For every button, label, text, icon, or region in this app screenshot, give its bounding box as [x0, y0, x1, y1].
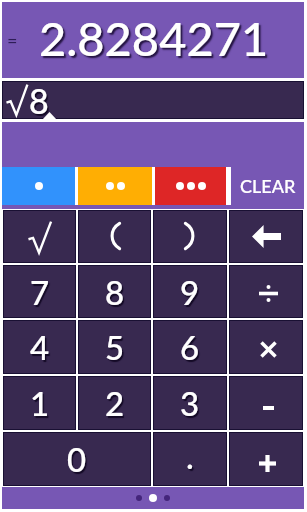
staticText: 6	[180, 327, 200, 367]
staticText: 1	[30, 383, 50, 423]
staticText: .	[186, 436, 194, 476]
staticText: 7	[30, 272, 50, 312]
button[interactable]: 1	[4, 377, 75, 429]
staticText: 9	[180, 272, 200, 312]
staticText: 4	[30, 327, 50, 367]
button[interactable]: Close bracket	[154, 211, 226, 262]
button[interactable]: Divide	[230, 266, 302, 317]
staticText: 5	[105, 327, 125, 367]
staticText: 2	[105, 383, 125, 423]
button[interactable]: Square root	[4, 211, 75, 262]
button[interactable]: 9	[154, 266, 226, 317]
staticText: 8	[105, 272, 125, 312]
staticText: 3	[180, 383, 200, 423]
button[interactable]: 2	[79, 377, 150, 429]
button[interactable]: Plus	[230, 433, 302, 485]
staticText: CLEAR	[240, 175, 296, 197]
button[interactable]: One	[2, 167, 75, 205]
button[interactable]: Two	[78, 167, 152, 205]
button[interactable]: 6	[154, 321, 226, 373]
button[interactable]: Three	[155, 167, 226, 205]
button[interactable]: Open bracket	[79, 211, 150, 262]
button[interactable]: Minus	[230, 377, 302, 429]
button[interactable]: 7	[4, 266, 75, 317]
button[interactable]: 8	[79, 266, 150, 317]
staticText: 2.8284271	[39, 10, 269, 66]
staticText: 8	[29, 80, 49, 116]
button[interactable]: 0	[4, 433, 150, 485]
button[interactable]: 4	[4, 321, 75, 373]
staticText: 0	[67, 439, 87, 479]
button[interactable]: Multiply	[230, 321, 302, 373]
button[interactable]: Backspace	[230, 211, 302, 262]
button[interactable]: 3	[154, 377, 226, 429]
button[interactable]: 5	[79, 321, 150, 373]
button[interactable]: 8	[3, 82, 303, 118]
button[interactable]: CLEAR	[231, 167, 304, 205]
button[interactable]: .	[154, 433, 226, 485]
staticText: =	[7, 29, 18, 51]
